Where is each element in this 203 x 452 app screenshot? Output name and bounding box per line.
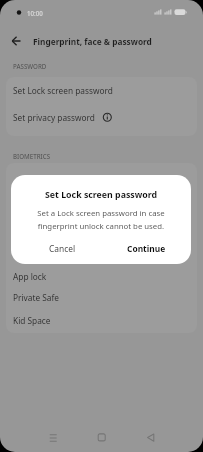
staticText: App lock <box>13 271 47 282</box>
button[interactable]: Continue <box>101 237 191 260</box>
staticText: Private Safe <box>13 292 60 303</box>
staticText: PASSWORD <box>13 62 47 70</box>
staticText: Set a Lock screen password in case finge… <box>37 208 165 231</box>
button[interactable]: Set Lock screen password <box>0 78 203 102</box>
button[interactable]: Set privacy password <box>0 105 203 129</box>
staticText: Set Lock screen password <box>13 85 113 96</box>
staticText: Set privacy password <box>13 112 95 123</box>
staticText: BIOMETRICS <box>13 152 51 160</box>
button[interactable] <box>42 428 64 448</box>
staticText: Cancel <box>49 243 76 254</box>
button[interactable] <box>8 33 26 51</box>
button[interactable]: Private Safe <box>0 287 203 308</box>
button[interactable]: Cancel <box>11 237 101 260</box>
staticText: 10:00 <box>27 9 43 17</box>
button[interactable]: Kid Space <box>0 309 203 331</box>
button[interactable] <box>91 428 113 448</box>
staticText: Fingerprint, face & password <box>33 36 152 47</box>
staticText: Set Lock screen password <box>45 189 158 201</box>
staticText: Kid Space <box>13 315 51 326</box>
button[interactable]: App lock <box>0 266 203 287</box>
staticText: Continue <box>127 243 166 254</box>
button[interactable] <box>140 428 162 448</box>
